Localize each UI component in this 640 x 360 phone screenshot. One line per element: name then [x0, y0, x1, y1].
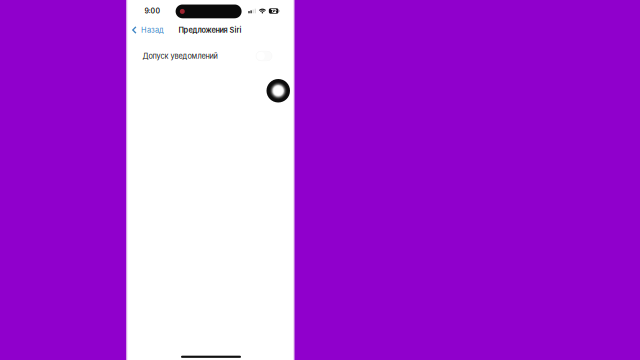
button[interactable]: Назад	[127, 22, 169, 38]
staticText: 9:00	[144, 7, 160, 15]
staticText: Допуск уведомлений	[142, 52, 217, 60]
staticText: Назад	[141, 25, 164, 34]
staticText: Предложения Siri	[178, 26, 241, 34]
